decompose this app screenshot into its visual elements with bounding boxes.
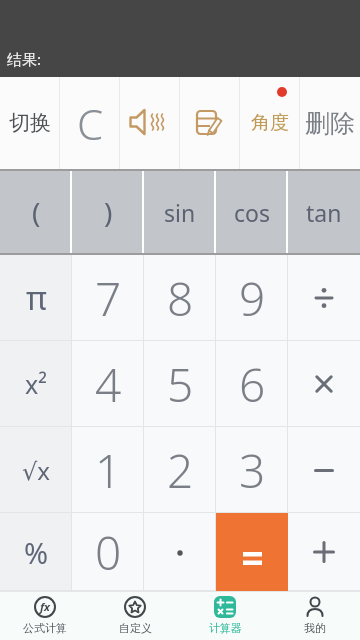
staticText: 4 bbox=[95, 353, 122, 416]
staticText: ( bbox=[32, 193, 41, 231]
staticText: tan bbox=[306, 197, 342, 228]
button[interactable]: 7 bbox=[72, 255, 144, 341]
button[interactable] bbox=[144, 513, 216, 591]
button[interactable]: 4 bbox=[72, 341, 144, 427]
staticText: 结果: bbox=[7, 49, 42, 69]
button[interactable] bbox=[180, 77, 240, 169]
button[interactable] bbox=[216, 513, 288, 591]
button[interactable]: π bbox=[0, 255, 72, 341]
staticText: 自定义 bbox=[119, 621, 152, 635]
button[interactable]: 角度 bbox=[240, 77, 300, 169]
staticText: 8 bbox=[167, 267, 194, 330]
staticText: 2 bbox=[167, 439, 194, 502]
button[interactable]: √x bbox=[0, 427, 72, 513]
button[interactable]: 2 bbox=[144, 427, 216, 513]
button[interactable]: ) bbox=[72, 171, 144, 253]
staticText: sin bbox=[164, 197, 196, 228]
staticText: 3 bbox=[239, 439, 266, 502]
button[interactable]: 切换 bbox=[0, 77, 60, 169]
button[interactable]: x² bbox=[0, 341, 72, 427]
staticText: √x bbox=[22, 454, 50, 487]
staticText: 我的 bbox=[304, 621, 326, 635]
staticText: 7 bbox=[95, 267, 122, 330]
staticText: % bbox=[24, 533, 49, 572]
button[interactable] bbox=[288, 427, 360, 513]
staticText: 6 bbox=[239, 353, 266, 416]
button[interactable]: sin bbox=[144, 171, 216, 253]
staticText: 5 bbox=[167, 353, 194, 416]
button[interactable]: 自定义 bbox=[90, 591, 180, 640]
button[interactable]: ( bbox=[0, 171, 72, 253]
button[interactable]: 5 bbox=[144, 341, 216, 427]
button[interactable] bbox=[288, 513, 360, 591]
button[interactable]: 6 bbox=[216, 341, 288, 427]
button[interactable]: 我的 bbox=[270, 591, 360, 640]
button[interactable]: 计算器 bbox=[180, 591, 270, 640]
button[interactable] bbox=[288, 255, 360, 341]
button[interactable] bbox=[120, 77, 180, 169]
button[interactable]: tan bbox=[288, 171, 360, 253]
staticText: cos bbox=[234, 197, 270, 228]
button[interactable]: cos bbox=[216, 171, 288, 253]
staticText: π bbox=[26, 276, 47, 320]
staticText: ) bbox=[104, 193, 113, 231]
staticText: fx bbox=[40, 599, 50, 614]
button[interactable]: fx bbox=[0, 591, 90, 640]
button[interactable]: 删除 bbox=[300, 77, 360, 169]
staticText: 计算器 bbox=[209, 621, 242, 635]
staticText: 0 bbox=[95, 521, 122, 584]
button[interactable]: 8 bbox=[144, 255, 216, 341]
staticText: 公式计算 bbox=[23, 621, 67, 635]
button[interactable] bbox=[288, 341, 360, 427]
staticText: C bbox=[77, 95, 104, 152]
staticText: 1 bbox=[95, 439, 122, 502]
staticText: 9 bbox=[239, 267, 266, 330]
button[interactable]: C bbox=[60, 77, 120, 169]
button[interactable]: 3 bbox=[216, 427, 288, 513]
staticText: 角度 bbox=[251, 111, 289, 135]
button[interactable]: 9 bbox=[216, 255, 288, 341]
staticText: x² bbox=[25, 367, 47, 401]
button[interactable]: 1 bbox=[72, 427, 144, 513]
staticText: 删除 bbox=[305, 108, 355, 139]
button[interactable]: 0 bbox=[72, 513, 144, 591]
button[interactable]: % bbox=[0, 513, 72, 591]
staticText: 切换 bbox=[9, 110, 51, 136]
